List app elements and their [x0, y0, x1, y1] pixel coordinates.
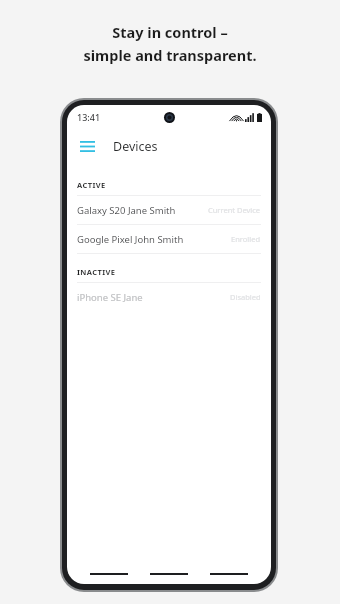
staticText: Disabled — [230, 292, 261, 302]
staticText: INACTIVE — [77, 267, 116, 277]
button[interactable]: Back — [88, 564, 130, 584]
button[interactable]: Galaxy S20 Jane Smith — [67, 196, 271, 224]
staticText: Enrolled — [231, 234, 261, 244]
button[interactable]: Recent apps — [208, 564, 250, 584]
staticText: Stay in control – — [112, 22, 228, 42]
button[interactable]: Open navigation menu — [73, 132, 101, 160]
button[interactable]: iPhone SE Jane — [67, 283, 271, 311]
button[interactable]: Home — [148, 564, 190, 584]
staticText: Google Pixel John Smith — [77, 233, 184, 246]
staticText: Galaxy S20 Jane Smith — [77, 204, 176, 217]
staticText: Devices — [113, 138, 158, 155]
button[interactable]: Google Pixel John Smith — [67, 225, 271, 253]
staticText: 13:41 — [77, 111, 101, 123]
staticText: Current Device — [208, 205, 261, 215]
staticText: simple and transparent. — [83, 45, 257, 65]
staticText: iPhone SE Jane — [77, 291, 143, 304]
staticText: ACTIVE — [77, 180, 106, 190]
